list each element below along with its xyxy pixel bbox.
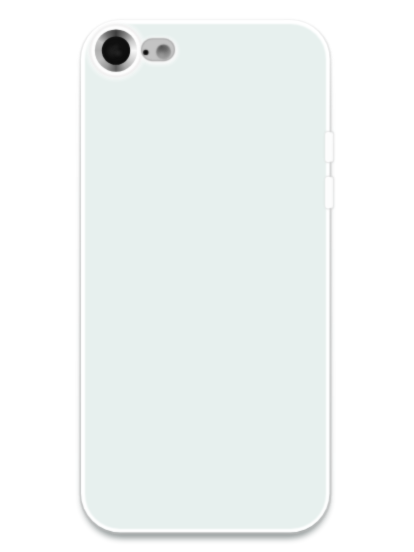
button[interactable]: Volume up — [325, 131, 334, 163]
button[interactable]: iPhone, white — [80, 19, 330, 533]
button[interactable]: Rear camera — [88, 23, 144, 79]
button[interactable]: Flash and microphone — [140, 37, 175, 61]
button[interactable]: Volume down — [325, 176, 334, 209]
other: White iPhone product photo, back view — [0, 0, 414, 552]
